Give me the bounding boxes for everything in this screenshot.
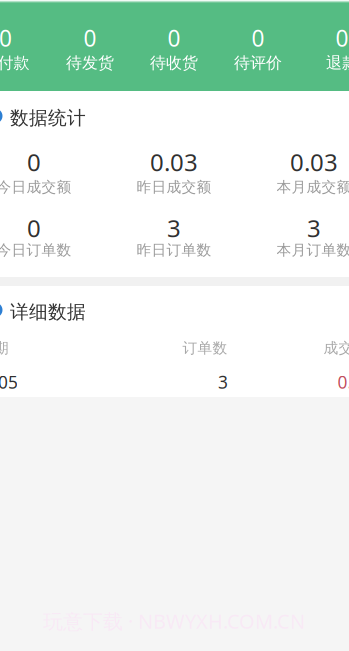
- staticText: 本月订单数: [276, 241, 349, 259]
- staticText: 0.03: [337, 370, 349, 393]
- button[interactable]: 0: [0, 0, 349, 651]
- staticText: 0: [0, 23, 12, 53]
- staticText: 今日订单数: [0, 241, 71, 259]
- staticText: 待发货: [66, 53, 114, 73]
- staticText: 0: [27, 212, 41, 244]
- button[interactable]: 0: [0, 0, 349, 651]
- button[interactable]: 0: [0, 0, 349, 651]
- staticText: 09-05: [0, 370, 18, 393]
- staticText: 待付款: [0, 53, 29, 73]
- staticText: 本月成交额: [276, 178, 349, 196]
- staticText: 昨日订单数: [136, 241, 211, 259]
- staticText: 0: [167, 23, 180, 53]
- staticText: 订单数: [182, 339, 227, 357]
- staticText: 3: [218, 370, 228, 393]
- staticText: 0: [251, 23, 264, 53]
- staticText: 数据统计: [10, 106, 86, 129]
- staticText: 今日成交额: [0, 178, 71, 196]
- staticText: 3: [167, 212, 181, 244]
- staticText: 待收货: [150, 53, 198, 73]
- staticText: 0.03: [290, 146, 338, 178]
- staticText: 0: [83, 23, 96, 53]
- staticText: 日期: [0, 339, 9, 357]
- staticText: 昨日成交额: [136, 178, 211, 196]
- button[interactable]: 0: [0, 0, 349, 651]
- button[interactable]: 0: [0, 0, 349, 651]
- staticText: 成交额: [323, 339, 349, 357]
- staticText: 0.03: [150, 146, 198, 178]
- staticText: 退款: [326, 53, 349, 73]
- staticText: 3: [307, 212, 321, 244]
- staticText: 0: [335, 23, 348, 53]
- staticText: 详细数据: [10, 300, 86, 323]
- staticText: 玩意下载 · NBWYXH.COM.CN: [43, 608, 305, 634]
- staticText: 待评价: [234, 53, 282, 73]
- staticText: 0: [27, 146, 41, 178]
